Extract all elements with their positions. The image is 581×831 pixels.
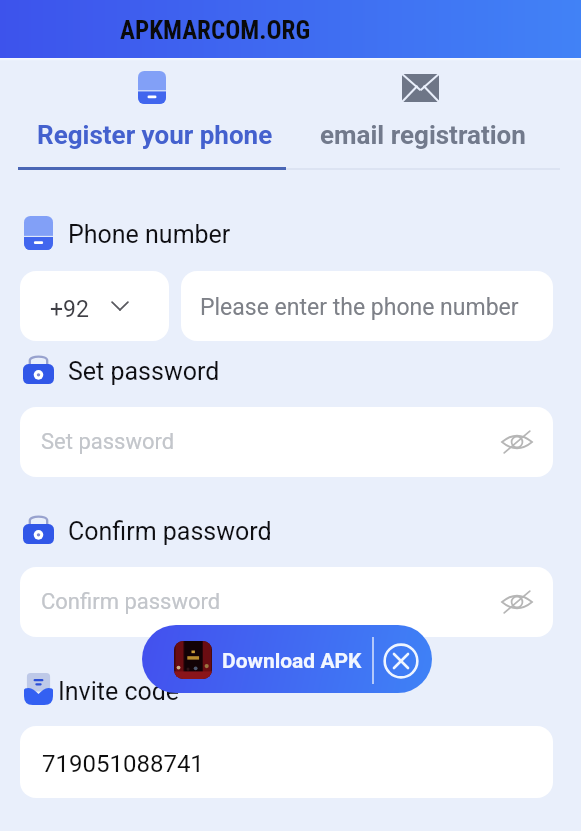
button[interactable]: Download APK — [142, 625, 432, 693]
staticText: Phone number — [68, 220, 231, 249]
staticText: Set password — [68, 357, 220, 386]
staticText: 719051088741 — [42, 750, 204, 778]
staticText: Register your phone — [37, 120, 273, 150]
button[interactable]: Close — [383, 643, 419, 679]
staticText: +92 — [50, 296, 89, 323]
button[interactable]: +92 — [20, 271, 169, 341]
staticText: Set password — [41, 429, 175, 455]
staticText: Download APK — [222, 649, 362, 674]
button[interactable]: Register your phone — [18, 61, 289, 174]
button[interactable]: email registration — [289, 61, 560, 174]
button[interactable]: Confirm password — [20, 567, 553, 637]
staticText: Please enter the phone number — [200, 294, 519, 321]
button[interactable]: 719051088741 — [20, 726, 553, 798]
staticText: email registration — [320, 120, 526, 150]
staticText: APKMARCOM.ORG — [120, 16, 311, 45]
button[interactable]: Please enter the phone number — [181, 271, 553, 341]
button[interactable]: Show password — [501, 589, 533, 615]
staticText: Invite code — [58, 677, 180, 706]
button[interactable]: Set password — [20, 407, 553, 477]
staticText: Confirm password — [41, 589, 221, 615]
button[interactable]: Show password — [501, 429, 533, 455]
staticText: Confirm password — [68, 517, 272, 546]
